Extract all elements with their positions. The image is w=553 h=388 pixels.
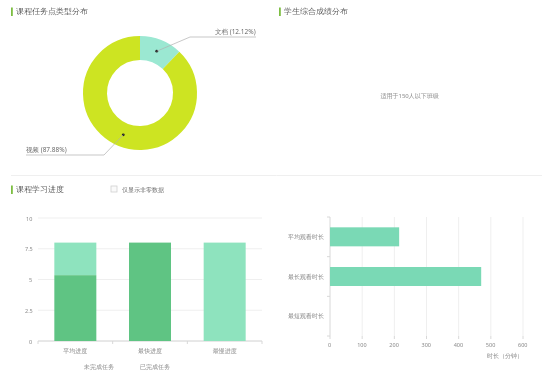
button[interactable]: 仅显示非零数据 bbox=[108, 183, 180, 196]
